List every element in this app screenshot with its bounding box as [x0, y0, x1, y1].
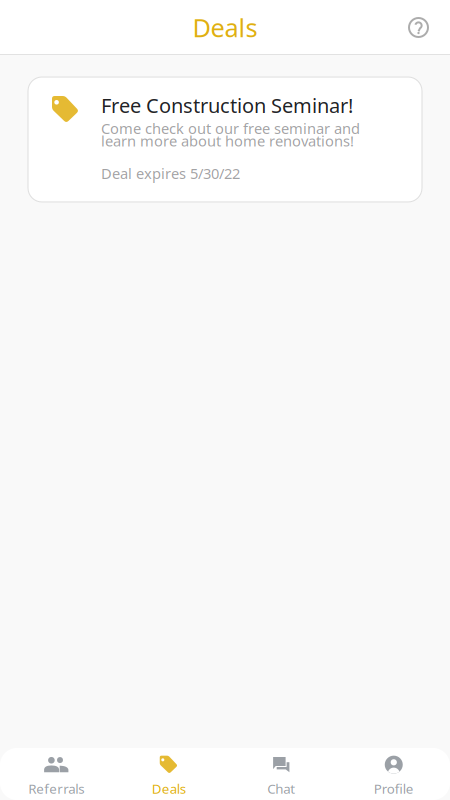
- staticText: Free Construction Seminar!: [101, 92, 353, 119]
- button[interactable]: Help: [397, 8, 450, 47]
- staticText: Deals: [192, 11, 257, 44]
- button[interactable]: Chat: [225, 745, 337, 800]
- button[interactable]: Deals: [112, 745, 225, 800]
- button[interactable]: Free Construction Seminar!: [28, 77, 422, 202]
- staticText: Deal expires 5/30/22: [101, 163, 240, 183]
- staticText: learn more about home renovations!: [101, 131, 354, 150]
- staticText: Profile: [374, 780, 414, 797]
- staticText: Chat: [267, 780, 295, 797]
- staticText: Referrals: [28, 780, 84, 797]
- staticText: Deals: [152, 780, 186, 797]
- button[interactable]: Profile: [337, 745, 450, 800]
- button[interactable]: Referrals: [0, 745, 112, 800]
- staticText: Come check out our free seminar and: [101, 119, 360, 138]
